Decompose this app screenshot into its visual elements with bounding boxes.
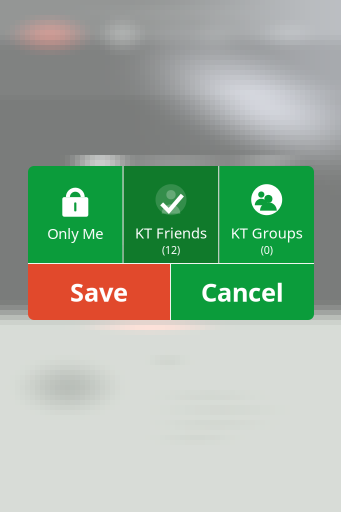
- staticText: Only Me: [47, 223, 103, 243]
- staticText: (0): [261, 243, 273, 257]
- staticText: (12): [162, 243, 180, 257]
- staticText: Cancel: [201, 275, 284, 309]
- staticText: Save: [70, 275, 128, 309]
- button[interactable]: KT Groups: [219, 166, 314, 263]
- button[interactable]: Cancel: [171, 264, 314, 320]
- staticText: KT Friends: [135, 223, 207, 243]
- staticText: KT Groups: [231, 223, 303, 243]
- button[interactable]: Save: [28, 264, 170, 320]
- button[interactable]: KT Friends: [124, 166, 218, 263]
- button[interactable]: Only Me: [28, 166, 123, 263]
